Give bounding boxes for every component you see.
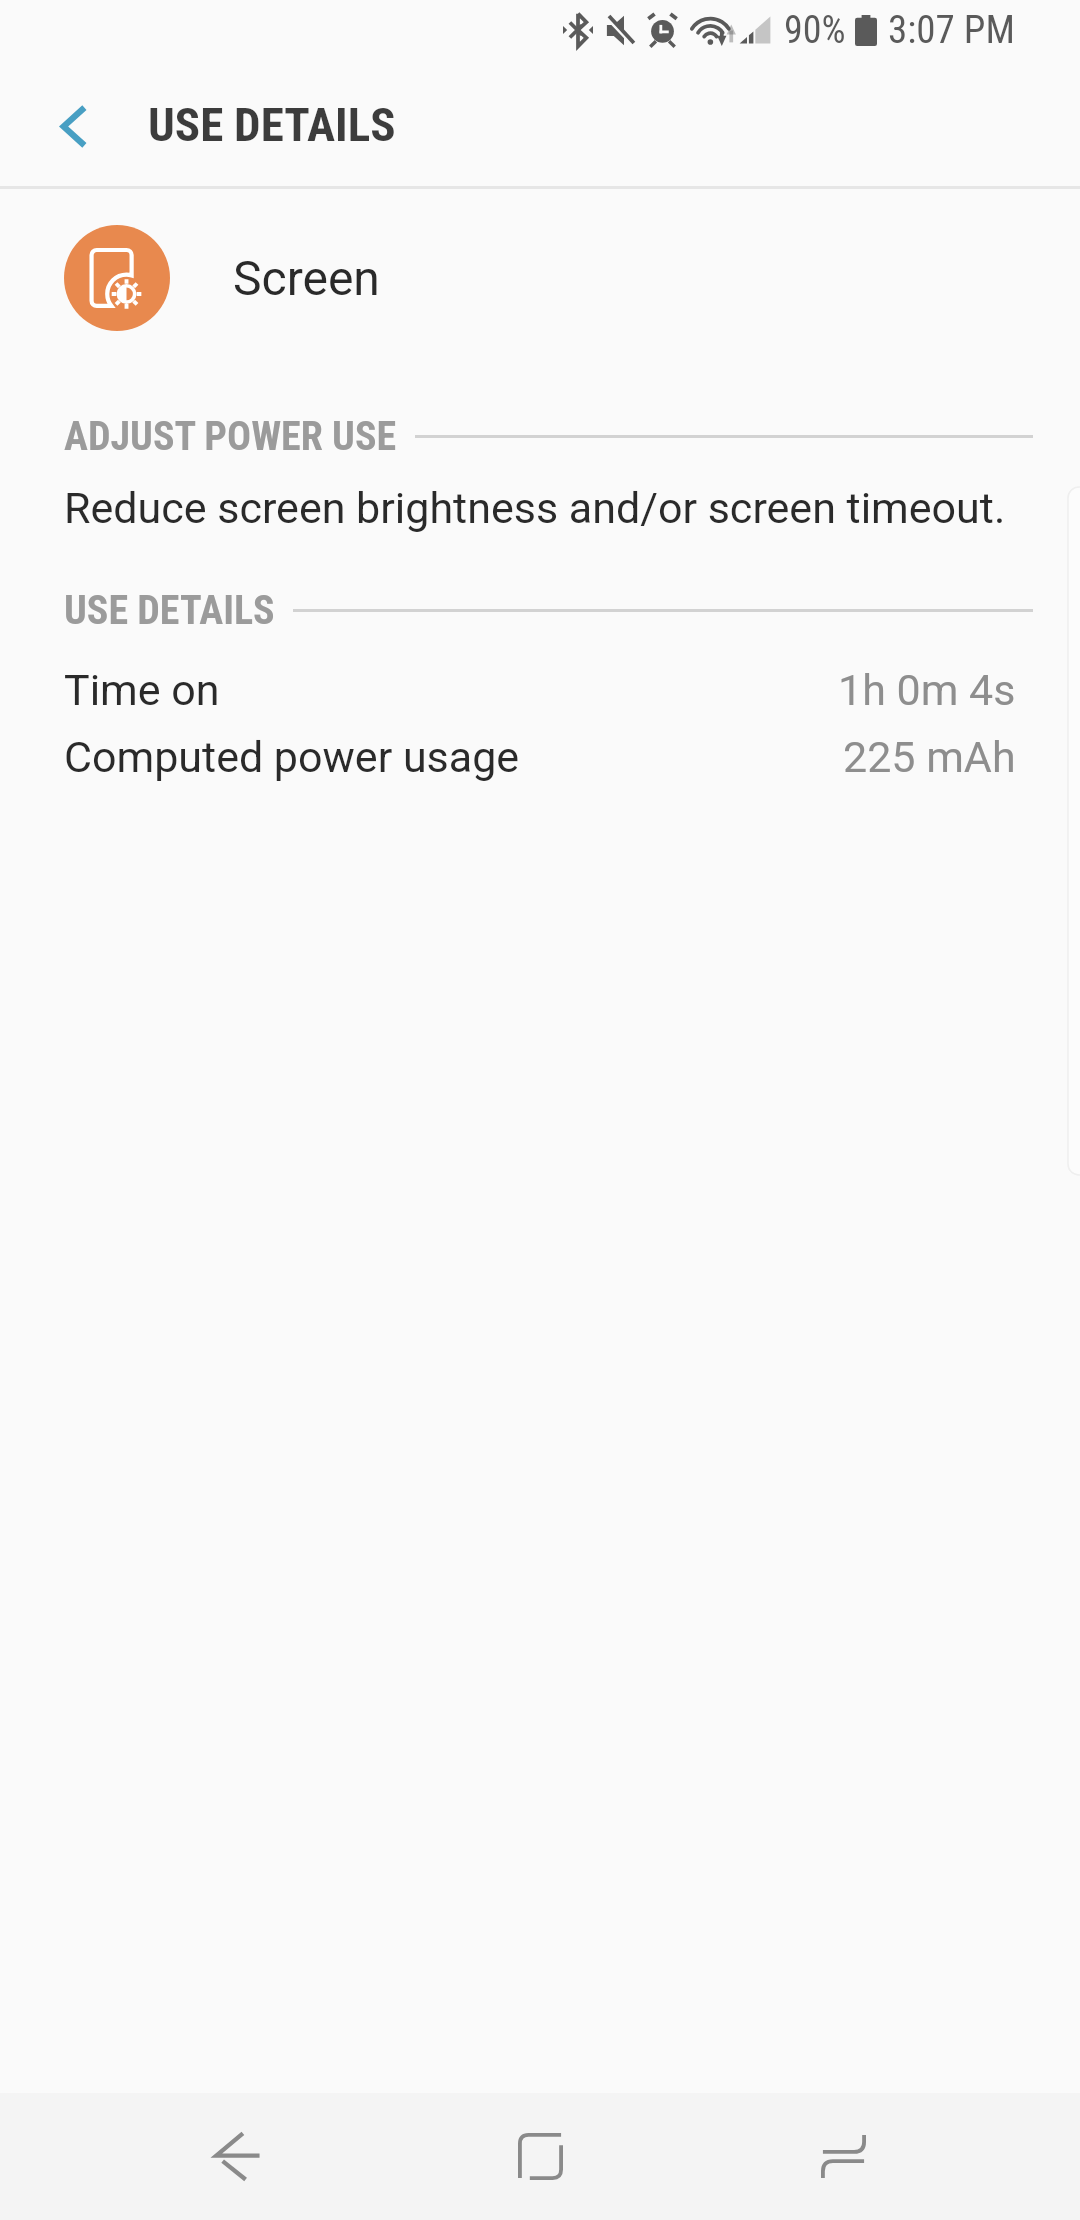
button[interactable]: Screen bbox=[0, 225, 1080, 331]
button[interactable]: Computed power usage bbox=[0, 723, 1080, 790]
staticText: Screen bbox=[233, 250, 380, 306]
button[interactable]: Navigate up bbox=[0, 62, 128, 186]
staticText: 225 mAh bbox=[843, 732, 1016, 782]
staticText: Computed power usage bbox=[64, 732, 520, 782]
staticText: ADJUST POWER USE bbox=[64, 413, 397, 460]
staticText: Time on bbox=[64, 665, 220, 715]
button[interactable]: Home bbox=[438, 2093, 643, 2220]
staticText: USE DETAILS bbox=[64, 587, 275, 634]
button[interactable]: Time on bbox=[0, 656, 1080, 723]
staticText: 1h 0m 4s bbox=[838, 665, 1016, 715]
staticText: USE DETAILS bbox=[148, 97, 396, 152]
staticText: 3:07 PM bbox=[888, 7, 1015, 53]
staticText: Reduce screen brightness and/or screen t… bbox=[64, 483, 1006, 533]
staticText: 90% bbox=[784, 8, 846, 53]
button[interactable]: Recent apps bbox=[741, 2093, 946, 2220]
button[interactable]: Back bbox=[135, 2093, 340, 2220]
